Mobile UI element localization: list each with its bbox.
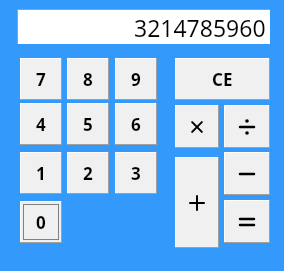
staticText: 4 [36,113,46,136]
button[interactable]: 8 [68,59,108,99]
staticText: 7 [36,68,46,91]
button[interactable]: Divide [225,106,269,147]
staticText: 3214785960 [134,12,266,43]
button[interactable]: CE [176,59,269,99]
staticText: 3 [131,162,141,185]
staticText: 0 [36,211,46,234]
button[interactable]: Multiply [176,106,218,147]
button[interactable]: 0 [23,204,59,240]
button[interactable]: 2 [68,153,108,193]
button[interactable]: Minus [225,153,269,194]
button[interactable]: 9 [116,59,156,99]
button[interactable]: 4 [21,104,61,144]
staticText: 6 [131,113,141,136]
button[interactable]: 6 [116,104,156,144]
staticText: 2 [83,162,93,185]
button[interactable]: Display [18,10,270,44]
staticText: 9 [131,68,141,91]
staticText: 8 [83,68,93,91]
button[interactable]: 3 [116,153,156,193]
button[interactable]: Equals [225,201,269,242]
button[interactable]: 7 [21,59,61,99]
button[interactable]: 1 [21,153,61,193]
staticText: 1 [36,162,46,185]
staticText: 5 [83,113,93,136]
staticText: CE [212,68,233,91]
button[interactable]: Plus [176,158,218,247]
button[interactable]: 5 [68,104,108,144]
